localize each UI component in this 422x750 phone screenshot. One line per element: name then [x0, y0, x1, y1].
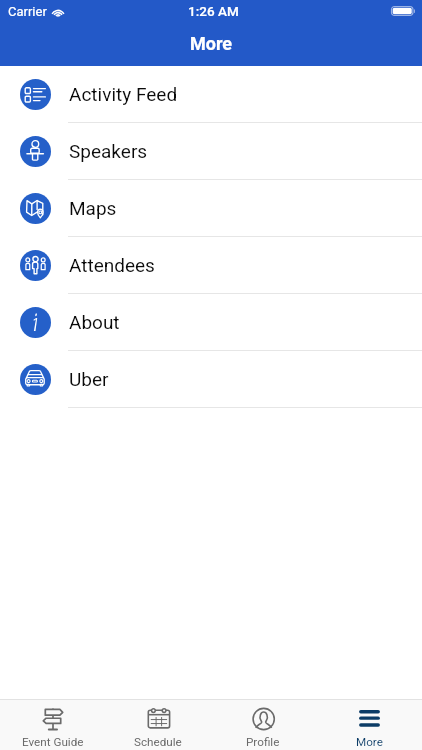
- staticText: More: [0, 33, 422, 54]
- staticText: Schedule: [134, 735, 182, 749]
- button[interactable]: Schedule: [105, 700, 210, 750]
- button[interactable]: Event Guide: [0, 700, 105, 750]
- staticText: Attendees: [69, 254, 155, 276]
- button[interactable]: Uber: [0, 351, 422, 408]
- button[interactable]: Attendees: [0, 237, 422, 294]
- staticText: Maps: [69, 197, 117, 219]
- button[interactable]: Profile: [210, 700, 316, 750]
- staticText: Carrier: [8, 4, 47, 19]
- button[interactable]: Maps: [0, 180, 422, 237]
- staticText: 1:26 AM: [188, 3, 239, 19]
- button[interactable]: Activity Feed: [0, 66, 422, 123]
- staticText: About: [69, 311, 120, 333]
- button[interactable]: More: [316, 700, 422, 750]
- staticText: Event Guide: [22, 735, 84, 749]
- staticText: Activity Feed: [69, 83, 178, 105]
- staticText: More: [356, 735, 383, 749]
- button[interactable]: About: [0, 294, 422, 351]
- other: Battery: [391, 6, 415, 16]
- staticText: Uber: [69, 368, 109, 390]
- button[interactable]: Speakers: [0, 123, 422, 180]
- staticText: Profile: [246, 735, 280, 749]
- staticText: Speakers: [69, 140, 148, 162]
